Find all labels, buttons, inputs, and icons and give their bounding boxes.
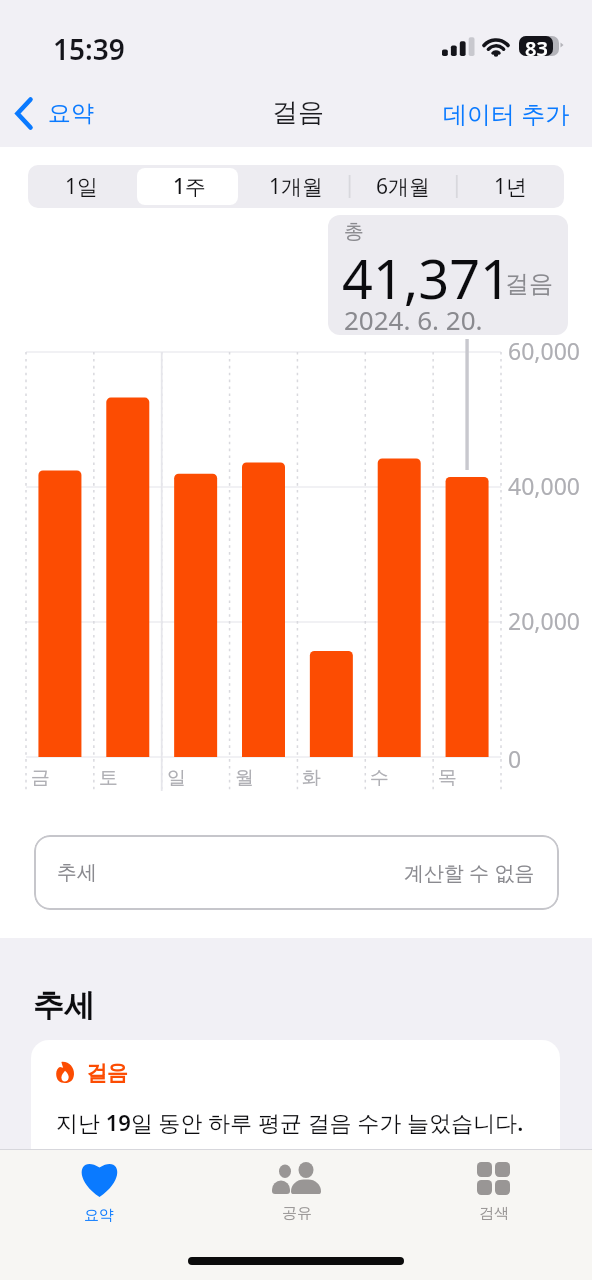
- button[interactable]: 1개월: [243, 165, 350, 208]
- staticText: 요약: [84, 1206, 114, 1225]
- staticText: 화: [302, 766, 321, 790]
- staticText: 83: [525, 35, 548, 62]
- button[interactable]: 6개월: [350, 165, 457, 208]
- button[interactable]: 1주: [136, 165, 243, 208]
- staticText: 41,371: [342, 241, 511, 315]
- staticText: 월: [235, 766, 254, 790]
- staticText: 걸음: [272, 96, 324, 129]
- staticText: 수: [370, 766, 389, 790]
- button[interactable]: 1일: [28, 165, 136, 208]
- staticText: 공유: [282, 1204, 312, 1223]
- staticText: 요약: [48, 99, 94, 128]
- button[interactable]: 1년: [457, 165, 564, 208]
- staticText: 추세: [57, 860, 97, 885]
- staticText: 지난 19일 동안 하루 평균 걸음 수가 늘었습니다.: [56, 1107, 524, 1137]
- staticText: 0: [508, 743, 522, 774]
- staticText: 1개월: [269, 172, 324, 201]
- staticText: 걸음: [86, 1060, 128, 1086]
- staticText: 2024. 6. 20.: [344, 302, 483, 335]
- staticText: 1년: [494, 172, 528, 201]
- button[interactable]: Summary: [0, 1155, 198, 1225]
- staticText: 걸음: [505, 269, 553, 299]
- staticText: 20,000: [508, 605, 580, 636]
- button[interactable]: Browse: [395, 1155, 592, 1223]
- staticText: 데이터 추가: [443, 97, 570, 130]
- staticText: 6개월: [376, 172, 431, 201]
- button[interactable]: Sharing: [198, 1155, 395, 1223]
- staticText: 1일: [65, 172, 99, 201]
- staticText: 계산할 수 없음: [404, 859, 535, 886]
- staticText: 목: [438, 766, 457, 790]
- staticText: 60,000: [508, 335, 580, 366]
- button[interactable]: 데이터 추가: [435, 93, 578, 134]
- staticText: 검색: [479, 1204, 509, 1223]
- staticText: 총: [344, 219, 364, 244]
- staticText: 일: [167, 766, 186, 790]
- button[interactable]: 추세: [34, 835, 559, 910]
- button[interactable]: 요약: [9, 93, 100, 134]
- staticText: 1주: [173, 172, 207, 201]
- staticText: 토: [99, 766, 118, 790]
- button[interactable]: 걸음: [31, 1040, 560, 1180]
- staticText: 추세: [33, 986, 95, 1025]
- staticText: 금: [31, 766, 50, 790]
- staticText: 40,000: [508, 470, 580, 501]
- staticText: 15:39: [53, 30, 125, 68]
